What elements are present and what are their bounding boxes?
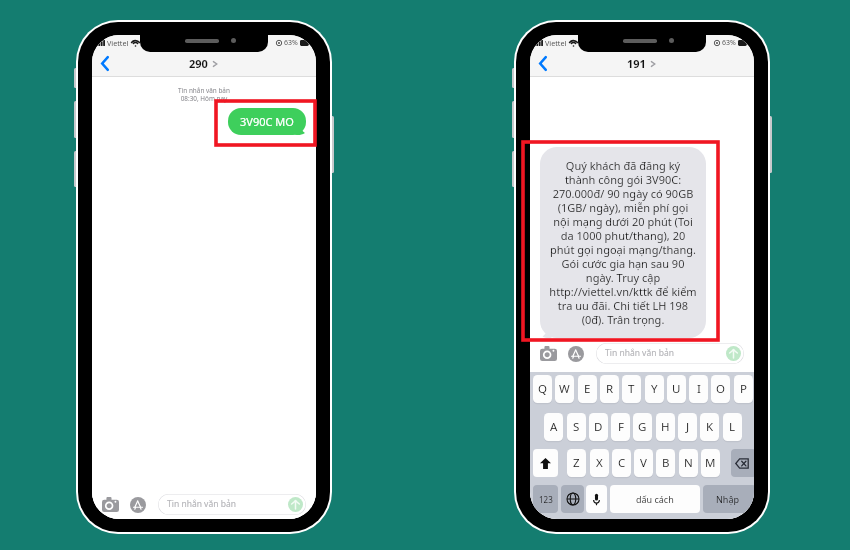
staticText: H	[661, 419, 670, 435]
button[interactable]: T	[622, 375, 641, 403]
button[interactable]: C	[612, 449, 631, 477]
button[interactable]: F	[611, 413, 630, 441]
staticText: O	[716, 381, 725, 397]
button[interactable]: I	[689, 375, 708, 403]
staticText: Z	[573, 455, 580, 471]
staticText: Quý khách đã đăng ký thành công gói 3V90…	[545, 158, 701, 327]
staticText: S	[573, 419, 580, 435]
staticText: C	[618, 455, 626, 471]
button[interactable]: Dictation	[586, 485, 607, 513]
button[interactable]: V	[634, 449, 653, 477]
staticText: dấu cách	[636, 493, 674, 505]
button[interactable]: Shift	[533, 449, 558, 477]
button[interactable]: Y	[645, 375, 664, 403]
button[interactable]: 123	[533, 485, 558, 513]
staticText: Viettel	[107, 38, 129, 48]
staticText: 3V90C MO	[240, 114, 294, 129]
staticText: Q	[538, 381, 547, 397]
staticText: Viettel	[545, 38, 567, 48]
button[interactable]: X	[590, 449, 609, 477]
staticText: 123	[539, 494, 553, 505]
staticText: 63%	[722, 38, 736, 48]
button[interactable]: M	[701, 449, 720, 477]
button[interactable]: K	[700, 413, 719, 441]
button[interactable]: dấu cách	[610, 485, 700, 513]
staticText: P	[740, 381, 747, 397]
staticText: 290	[189, 56, 208, 71]
staticText: Nhập	[716, 493, 739, 505]
staticText: 63%	[284, 38, 298, 48]
button[interactable]: N	[679, 449, 698, 477]
button[interactable]: H	[656, 413, 675, 441]
button[interactable]: Q	[533, 375, 552, 403]
staticText: Y	[651, 381, 658, 397]
button[interactable]: Camera	[102, 497, 119, 512]
button[interactable]: D	[589, 413, 608, 441]
button[interactable]: Back	[96, 52, 116, 74]
staticText: 08:30, Hôm nay	[92, 94, 316, 103]
staticText: F	[618, 419, 624, 435]
staticText: J	[686, 419, 690, 435]
staticText: I	[697, 381, 701, 397]
button[interactable]: Nhập	[703, 485, 754, 513]
button[interactable]: Tin nhắn văn bản	[596, 343, 744, 364]
button[interactable]: B	[656, 449, 675, 477]
staticText: A	[550, 419, 558, 435]
button[interactable]: Tin nhắn văn bản	[158, 494, 306, 515]
button[interactable]: Z	[567, 449, 586, 477]
staticText: L	[729, 419, 736, 435]
button[interactable]: S	[567, 413, 586, 441]
button[interactable]: A	[544, 413, 563, 441]
staticText: U	[672, 381, 681, 397]
button[interactable]: Camera	[540, 346, 557, 361]
staticText: X	[596, 455, 603, 471]
button[interactable]: G	[633, 413, 652, 441]
staticText: R	[606, 381, 614, 397]
button[interactable]: App Store	[568, 346, 584, 362]
button[interactable]: 3V90C MO	[228, 108, 306, 135]
staticText: Tin nhắn văn bản	[92, 86, 316, 95]
button[interactable]: R	[600, 375, 619, 403]
button[interactable]: U	[667, 375, 686, 403]
button[interactable]: P	[734, 375, 753, 403]
button[interactable]: E	[578, 375, 597, 403]
button[interactable]: Send	[288, 497, 303, 512]
staticText: K	[706, 419, 714, 435]
button[interactable]: Send	[726, 346, 741, 361]
button[interactable]: L	[723, 413, 742, 441]
button[interactable]: Backspace	[731, 449, 754, 477]
staticText: Tin nhắn văn bản	[167, 498, 236, 510]
button[interactable]: Back	[534, 52, 554, 74]
button[interactable]: Change language	[561, 485, 584, 513]
staticText: N	[684, 455, 693, 471]
staticText: 191	[627, 56, 646, 71]
button[interactable]: J	[678, 413, 697, 441]
staticText: M	[705, 455, 716, 471]
button[interactable]: App Store	[130, 497, 146, 513]
staticText: B	[662, 455, 670, 471]
staticText: D	[594, 419, 603, 435]
button[interactable]: O	[711, 375, 730, 403]
staticText: W	[559, 381, 570, 397]
button[interactable]: W	[555, 375, 574, 403]
staticText: V	[640, 455, 647, 471]
staticText: T	[628, 381, 635, 397]
staticText: E	[584, 381, 591, 397]
staticText: Tin nhắn văn bản	[605, 347, 674, 359]
staticText: G	[638, 419, 647, 435]
button[interactable]: Quý khách đã đăng ký thành công gói 3V90…	[540, 147, 706, 338]
